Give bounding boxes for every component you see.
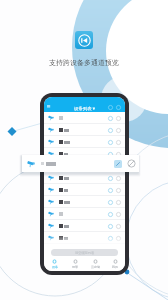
button[interactable]: Device options [116, 152, 121, 157]
button[interactable]: 清空缓存列表 [51, 249, 118, 256]
button[interactable]: Device options [116, 164, 121, 169]
staticText: 设备 [52, 265, 58, 269]
button[interactable]: Preview device [114, 160, 122, 168]
button[interactable]: Search [108, 105, 113, 110]
staticText: 清空缓存列表 [75, 251, 95, 255]
staticText: 支持跨设备多通道预览 [49, 58, 119, 67]
button[interactable]: Preview device [44, 112, 125, 124]
button[interactable]: 报警 [65, 257, 85, 271]
button[interactable]: Device options [116, 224, 121, 229]
button[interactable]: Preview device [44, 220, 125, 232]
button[interactable]: 云存储 [85, 257, 105, 271]
button[interactable]: Preview device [108, 212, 113, 217]
button[interactable]: Preview device [44, 208, 125, 220]
button[interactable]: Preview device [44, 136, 125, 148]
button[interactable]: Device options [116, 140, 121, 145]
button[interactable]: Device options [116, 200, 121, 205]
button[interactable]: Add device [116, 105, 121, 110]
button[interactable]: Preview device [108, 176, 113, 181]
button[interactable]: Preview device [44, 124, 125, 136]
button[interactable]: Preview device [108, 116, 113, 121]
button[interactable]: Device options [116, 212, 121, 217]
button[interactable]: Device options [116, 176, 121, 181]
button[interactable]: Disable device [127, 159, 136, 168]
button[interactable]: Preview device [44, 172, 125, 184]
button[interactable]: Preview device [108, 188, 113, 193]
staticText: 设备列表 ▾ [74, 105, 95, 111]
button[interactable]: 设备 [44, 257, 65, 271]
button[interactable]: Preview device [108, 152, 113, 157]
button[interactable]: Device options [116, 116, 121, 121]
button[interactable]: Device options [116, 128, 121, 133]
staticText: 我的 [112, 265, 118, 269]
button[interactable]: Multi channel preview [75, 31, 93, 49]
button[interactable]: Preview device [44, 148, 125, 160]
staticText: 报警 [72, 265, 78, 269]
button[interactable]: Preview device [44, 232, 125, 244]
button[interactable]: Preview device [44, 196, 125, 208]
button[interactable]: Preview device [108, 224, 113, 229]
button[interactable]: Preview device [108, 140, 113, 145]
button[interactable]: Preview device [108, 236, 113, 241]
button[interactable]: 我的 [105, 257, 125, 271]
button[interactable]: Preview device [44, 160, 125, 172]
button[interactable]: Device options [116, 188, 121, 193]
staticText: 云存储 [91, 265, 100, 269]
button[interactable]: Preview device [108, 128, 113, 133]
button[interactable]: Preview device [44, 184, 125, 196]
button[interactable]: Preview device [22, 155, 139, 172]
button[interactable]: Device options [116, 236, 121, 241]
button[interactable]: Preview device [108, 200, 113, 205]
